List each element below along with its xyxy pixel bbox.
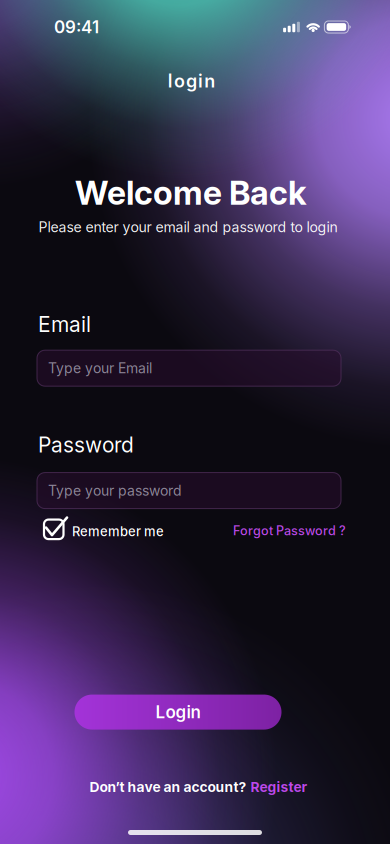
button[interactable]: Email [37, 350, 341, 386]
staticText: Login [155, 702, 200, 722]
staticText: Type your password [48, 482, 182, 499]
staticText: Email [38, 312, 91, 337]
button[interactable]: Remember me [43, 520, 164, 541]
staticText: Register [250, 779, 307, 795]
staticText: Don’t have an account? [89, 779, 246, 795]
staticText: Forgot Password ? [233, 523, 346, 538]
staticText: 09:41 [54, 17, 99, 37]
button[interactable]: Forgot Password ? [233, 522, 346, 538]
staticText: Please enter your email and password to … [38, 219, 337, 236]
button[interactable]: Password [37, 473, 341, 509]
staticText: Remember me [72, 524, 164, 539]
staticText: Type your Email [48, 360, 152, 377]
button[interactable]: Login [74, 695, 281, 730]
staticText: login [168, 70, 215, 92]
button[interactable]: Register [250, 779, 307, 795]
staticText: Password [38, 432, 134, 458]
staticText: Welcome Back [75, 173, 307, 213]
